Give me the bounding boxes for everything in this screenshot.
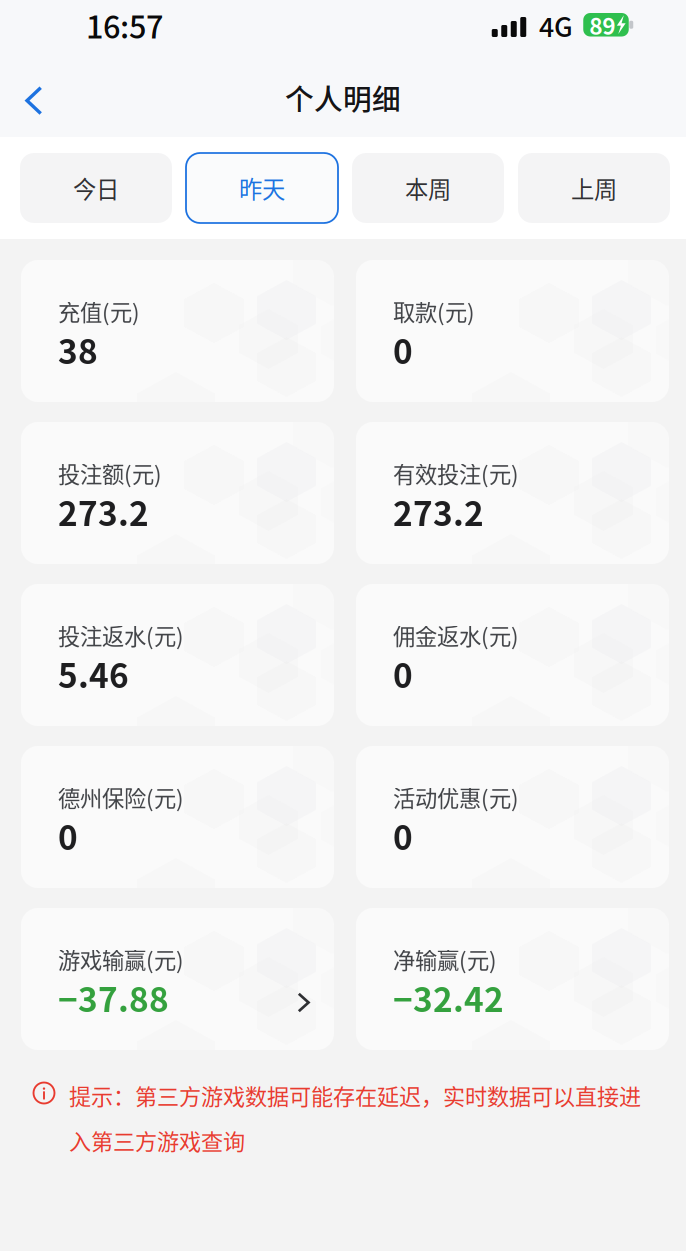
- staticText: 取款(元): [393, 295, 475, 327]
- staticText: 89: [589, 8, 615, 41]
- staticText: 德州保险(元): [58, 781, 184, 813]
- button[interactable]: 本周: [352, 153, 504, 223]
- staticText: 0: [58, 811, 78, 859]
- staticText: 0: [393, 811, 413, 859]
- staticText: 净输赢(元): [393, 943, 497, 975]
- staticText: 提示：第三方游戏数据可能存在延迟，实时数据可以直接进入第三方游戏查询: [69, 1079, 641, 1156]
- staticText: 0: [393, 325, 413, 373]
- button[interactable]: 今日: [20, 153, 172, 223]
- staticText: 投注额(元): [58, 457, 162, 489]
- staticText: 16:57: [86, 3, 163, 47]
- button[interactable]: 上周: [518, 153, 670, 223]
- staticText: 充值(元): [58, 295, 140, 327]
- staticText: 有效投注(元): [393, 457, 519, 489]
- staticText: 本周: [405, 171, 451, 205]
- staticText: 38: [58, 325, 98, 373]
- staticText: 5.46: [58, 649, 129, 697]
- staticText: 活动优惠(元): [393, 781, 519, 813]
- staticText: 273.2: [393, 487, 484, 535]
- staticText: −32.42: [393, 973, 504, 1021]
- staticText: 佣金返水(元): [393, 619, 519, 651]
- staticText: 昨天: [239, 171, 285, 205]
- staticText: 0: [393, 649, 413, 697]
- staticText: 投注返水(元): [58, 619, 184, 651]
- staticText: 273.2: [58, 487, 149, 535]
- button[interactable]: 昨天: [186, 153, 338, 223]
- staticText: −37.88: [58, 973, 169, 1021]
- staticText: 上周: [571, 171, 617, 205]
- staticText: 今日: [73, 171, 119, 205]
- button[interactable]: Back: [0, 58, 70, 137]
- staticText: 游戏输赢(元): [58, 943, 184, 975]
- staticText: 个人明细: [285, 77, 401, 118]
- staticText: 4G: [539, 6, 573, 45]
